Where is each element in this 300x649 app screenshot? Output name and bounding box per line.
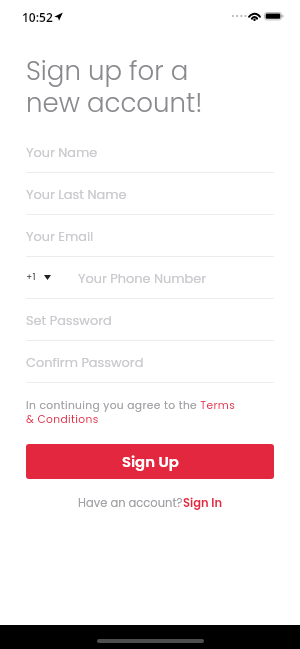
staticText: Your Email: [26, 227, 94, 245]
button[interactable]: Your Last Name: [26, 173, 274, 215]
staticText: Sign up for a new account!: [26, 53, 203, 121]
button[interactable]: Confirm Password: [26, 341, 274, 383]
button[interactable]: Your Email: [26, 215, 274, 257]
staticText: +1: [26, 271, 36, 284]
staticText: Sign Up: [122, 451, 179, 472]
button[interactable]: In continuing you agree to the Terms & C…: [26, 398, 274, 427]
staticText: Set Password: [26, 311, 112, 329]
staticText: Have an account?: [78, 495, 183, 511]
button[interactable]: Sign Up: [26, 444, 274, 479]
other: Select country code: [44, 275, 51, 280]
staticText: In continuing you agree to the Terms & C…: [26, 398, 236, 427]
button[interactable]: Have an account?: [78, 495, 223, 511]
staticText: Sign In: [183, 495, 223, 511]
staticText: Your Name: [26, 143, 98, 161]
button[interactable]: Your Name: [26, 131, 274, 173]
staticText: 10:52: [22, 9, 53, 25]
button[interactable]: Set Password: [26, 299, 274, 341]
staticText: Confirm Password: [26, 353, 144, 371]
staticText: Your Last Name: [26, 185, 127, 203]
button[interactable]: +1: [26, 257, 274, 299]
staticText: Your Phone Number: [78, 269, 207, 287]
